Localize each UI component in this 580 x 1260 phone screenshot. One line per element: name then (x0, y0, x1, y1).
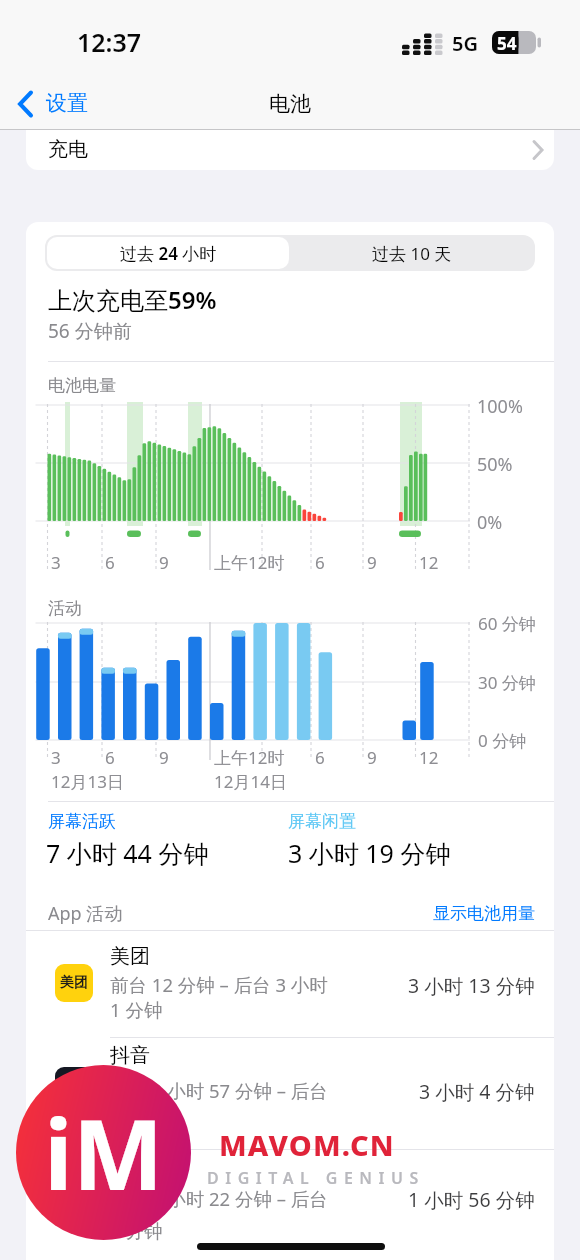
staticText: 3 小时 13 分钟 (408, 972, 535, 999)
button[interactable] (26, 931, 554, 1037)
staticText: MAVOM.CN (219, 1125, 395, 1164)
staticText: 美团 (110, 944, 150, 969)
staticText: 上次充电至59% (48, 283, 217, 316)
staticText: 9 (367, 746, 377, 769)
staticText: 4 分钟 (110, 1218, 163, 1243)
staticText: 电池电量 (48, 375, 116, 396)
staticText: 56 分钟前 (48, 318, 132, 344)
button[interactable] (26, 1038, 554, 1150)
staticText: 12月14日 (214, 770, 287, 793)
staticText: 9 (159, 746, 169, 769)
button[interactable]: 充电 (26, 130, 554, 170)
staticText: 屏幕闲置 (288, 811, 356, 832)
staticText: 6 (105, 551, 115, 574)
staticText: 9 (159, 551, 169, 574)
staticText: 3 (51, 746, 61, 769)
staticText: 5G (452, 30, 478, 57)
staticText: 活动 (48, 598, 82, 619)
staticText: 前台 1 小时 22 分钟 – 后台 (110, 1186, 328, 1211)
button[interactable]: 显示电池用量 (380, 901, 535, 925)
staticText: 7 小时 44 分钟 (46, 836, 209, 870)
staticText: 美团 (60, 974, 88, 992)
staticText: 电池 (269, 91, 311, 117)
staticText: 显示电池用量 (433, 903, 535, 924)
staticText: 前台 2 小时 57 分钟 – 后台 (110, 1078, 328, 1103)
staticText: DIGITAL GENIUS (207, 1167, 425, 1189)
staticText: 上午12时 (214, 746, 285, 769)
button[interactable]: 过去 10 天 (291, 237, 533, 269)
staticText: 12 (419, 551, 439, 574)
staticText: App 活动 (48, 901, 123, 926)
staticText: 0 分钟 (478, 729, 527, 752)
staticText: 充电 (48, 137, 88, 162)
staticText: 3 小时 4 分钟 (419, 1078, 535, 1105)
staticText: 3 小时 19 分钟 (288, 836, 451, 870)
staticText: 6 (315, 746, 325, 769)
staticText: 12:37 (77, 25, 142, 59)
staticText: 3 (51, 551, 61, 574)
staticText: 9 (367, 551, 377, 574)
staticText: 6 分钟 (110, 1103, 163, 1128)
staticText: 0% (477, 510, 503, 535)
staticText: 前台 12 分钟 – 后台 3 小时 (110, 972, 328, 997)
staticText: 上午12时 (214, 551, 285, 574)
staticText: 设置 (46, 90, 88, 116)
staticText: 微信 (110, 1154, 150, 1179)
button[interactable]: 设置 (40, 88, 82, 114)
staticText: 12月13日 (51, 770, 124, 793)
button[interactable] (26, 1150, 554, 1260)
staticText: 12 (419, 746, 439, 769)
staticText: 屏幕活跃 (48, 811, 116, 832)
staticText: 1 分钟 (110, 997, 163, 1022)
staticText: 过去 10 天 (372, 242, 452, 265)
staticText: 100% (477, 394, 523, 419)
staticText: 54 (497, 32, 517, 55)
staticText: 1 小时 56 分钟 (408, 1186, 535, 1213)
staticText: 6 (105, 746, 115, 769)
staticText: 6 (315, 551, 325, 574)
staticText: 30 分钟 (478, 671, 536, 694)
staticText: 抖音 (110, 1043, 150, 1068)
staticText: iM (44, 1087, 164, 1218)
staticText: 60 分钟 (478, 612, 536, 635)
staticText: 过去 24 小时 (120, 242, 217, 265)
button[interactable]: 过去 24 小时 (47, 237, 289, 269)
staticText: 50% (477, 452, 513, 477)
